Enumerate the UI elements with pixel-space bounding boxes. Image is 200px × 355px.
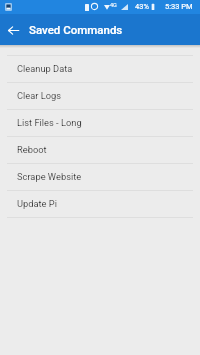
staticText: Cleanup Data [17,63,73,74]
staticText: Update Pi [17,198,57,209]
button[interactable]: Back [0,15,26,45]
staticText: 4G [110,2,117,8]
staticText: List Files - Long [17,117,82,128]
button[interactable]: List Files - Long [0,110,200,136]
staticText: 43% [135,2,149,11]
button[interactable]: Scrape Website [0,164,200,190]
staticText: Clear Logs [17,90,62,101]
button[interactable]: Reboot [0,137,200,163]
staticText: 5:33 PM [165,2,193,11]
button[interactable]: Clear Logs [0,83,200,109]
staticText: Scrape Website [17,171,82,182]
staticText: Reboot [17,144,47,155]
button[interactable]: Update Pi [0,191,200,217]
button[interactable]: Cleanup Data [0,56,200,82]
staticText: Saved Commands [29,23,123,36]
